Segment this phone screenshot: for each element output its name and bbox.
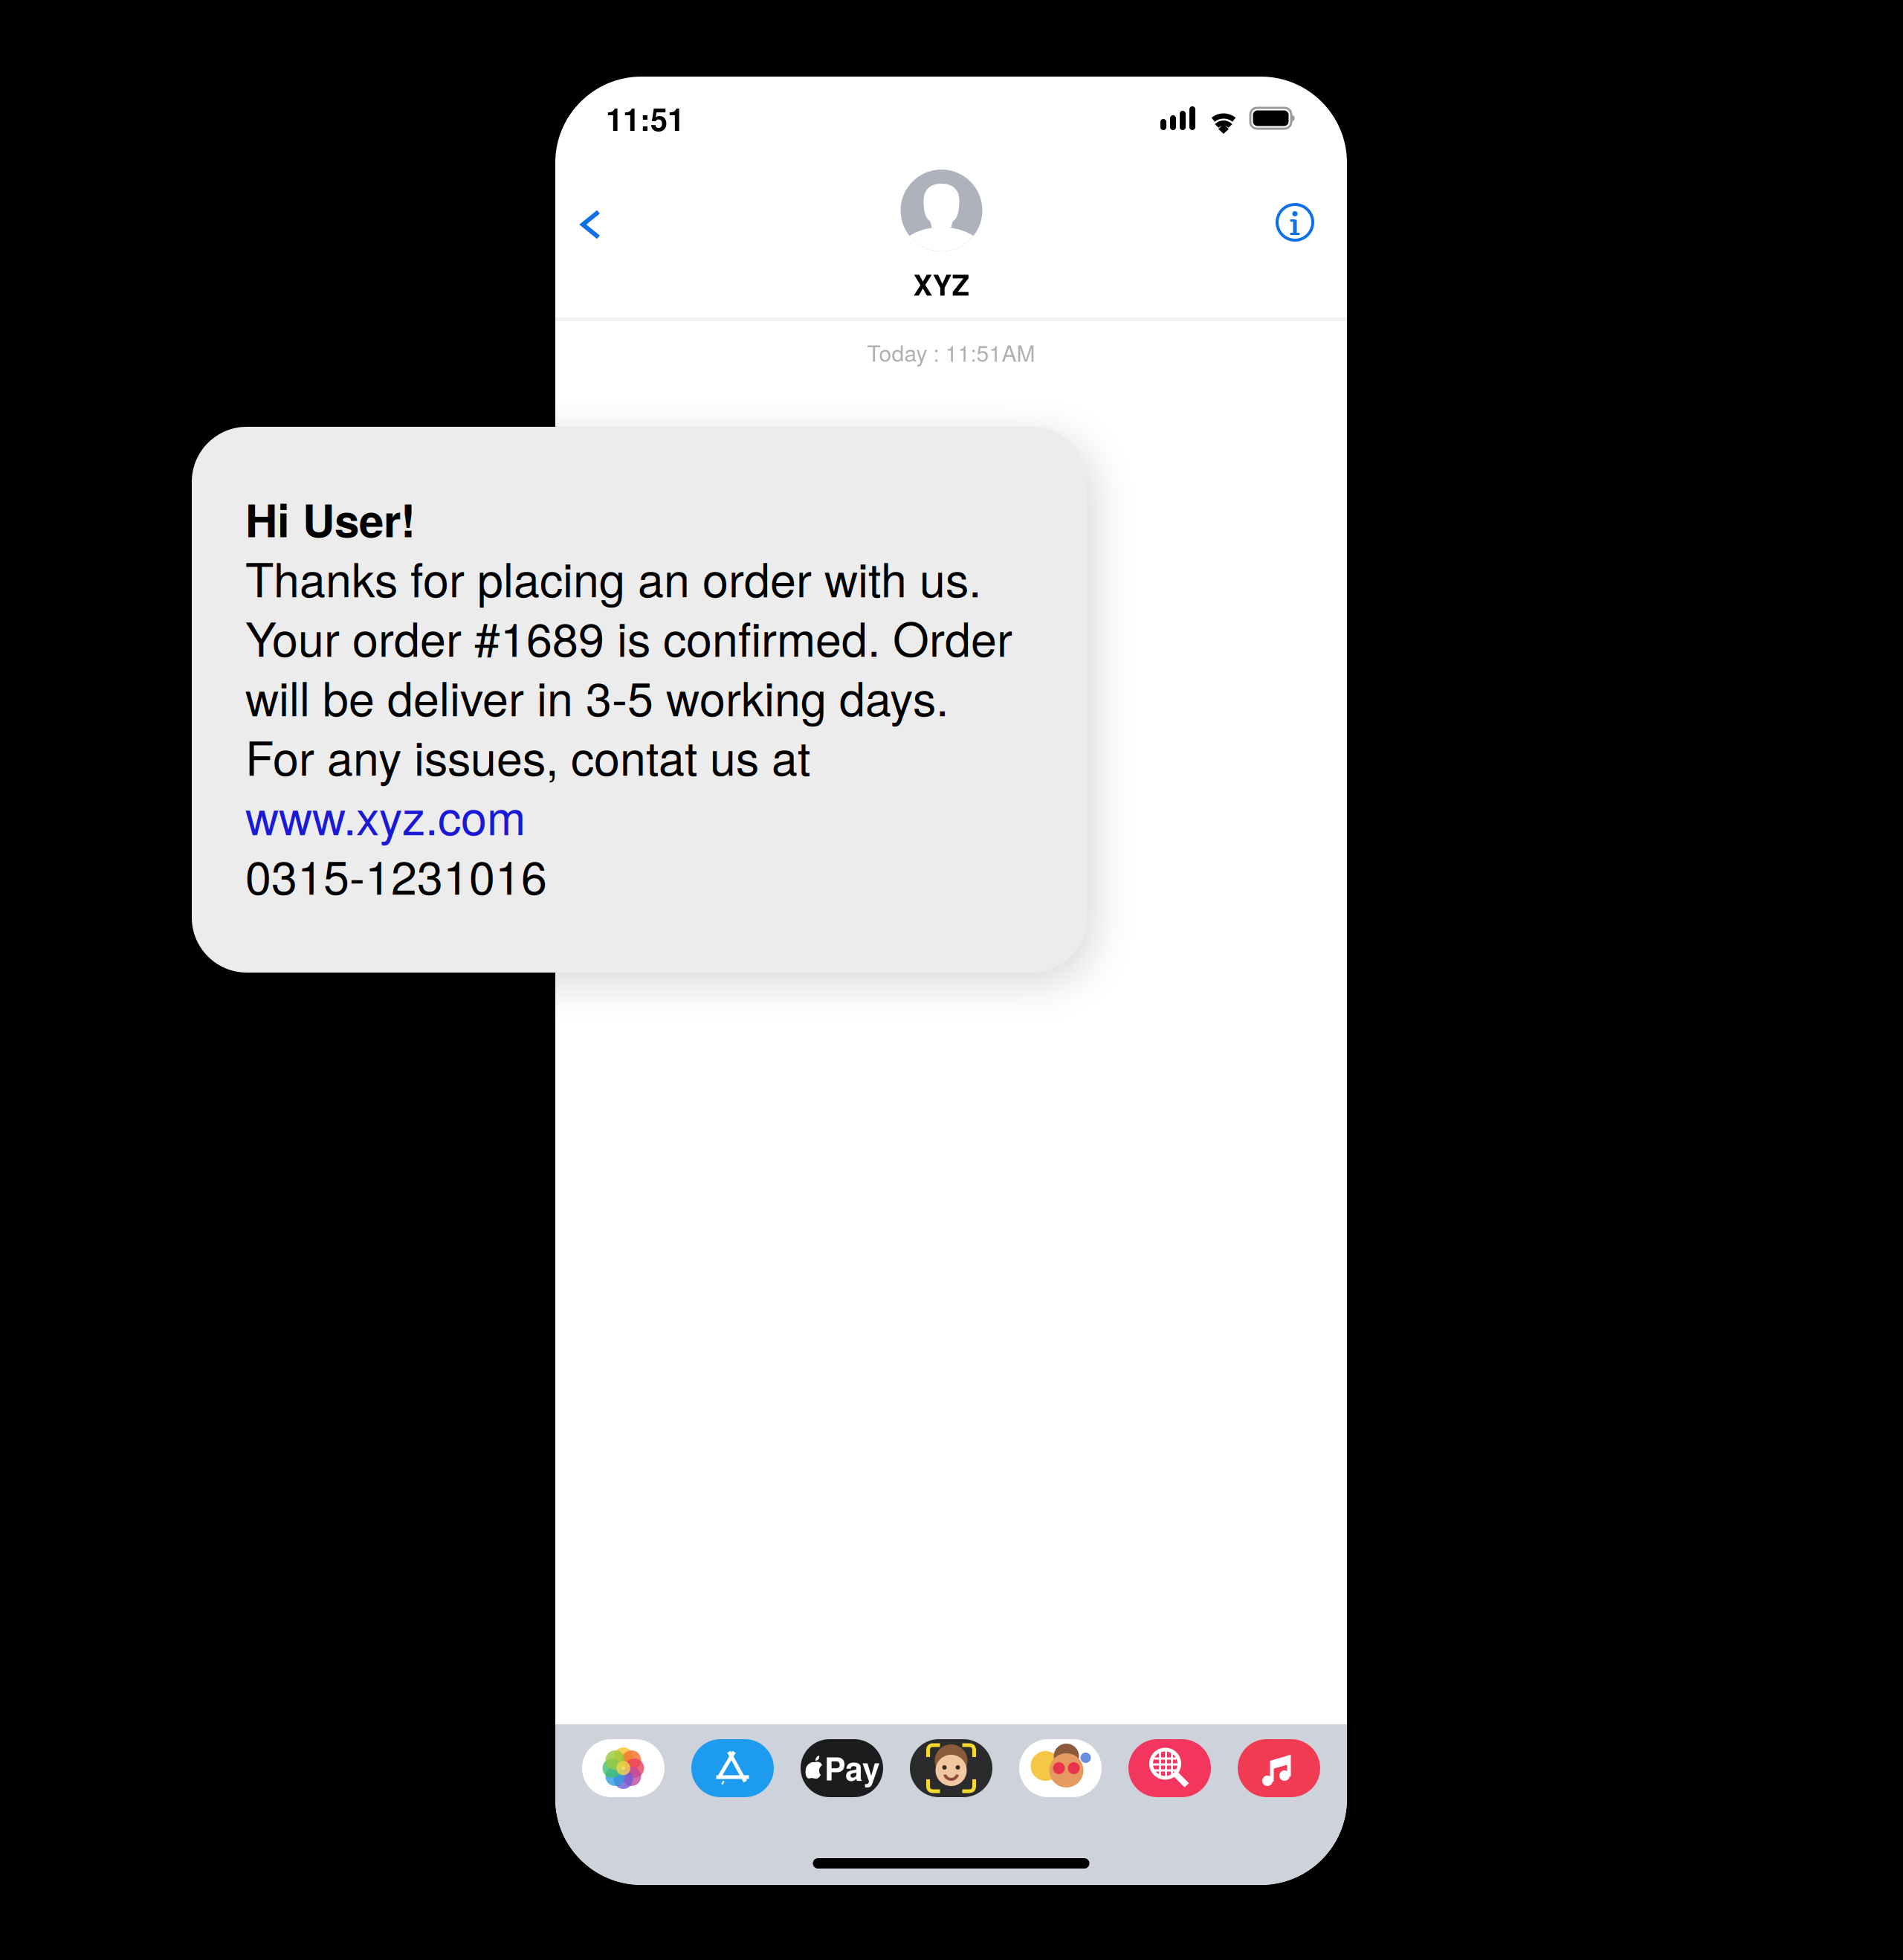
button[interactable]: Info <box>1246 187 1347 258</box>
staticText: For any issues, contat us at <box>245 722 810 789</box>
button[interactable]: Back <box>555 190 630 259</box>
button[interactable]: Apple Pay <box>801 1739 883 1797</box>
button[interactable]: App Store <box>691 1739 774 1797</box>
staticText: XYZ <box>913 263 970 304</box>
button[interactable]: #images <box>1128 1739 1211 1797</box>
staticText: Today : 11:51AM <box>867 336 1035 368</box>
button[interactable]: Memoji <box>910 1739 992 1797</box>
staticText: Pay <box>824 1745 880 1790</box>
staticText: will be deliver in 3-5 working days. <box>245 663 949 729</box>
button[interactable]: Stickers <box>1019 1739 1102 1797</box>
staticText: Thanks for placing an order with us. <box>245 544 981 610</box>
staticText: www.xyz.com <box>245 782 526 848</box>
staticText: 11:51 <box>606 96 685 140</box>
staticText: Hi User! <box>245 487 416 551</box>
staticText: Your order #1689 is confirmed. Order <box>245 603 1012 670</box>
staticText: 0315-1231016 <box>245 841 547 908</box>
button[interactable]: Music <box>1238 1739 1320 1797</box>
button[interactable]: Photos <box>582 1739 665 1797</box>
